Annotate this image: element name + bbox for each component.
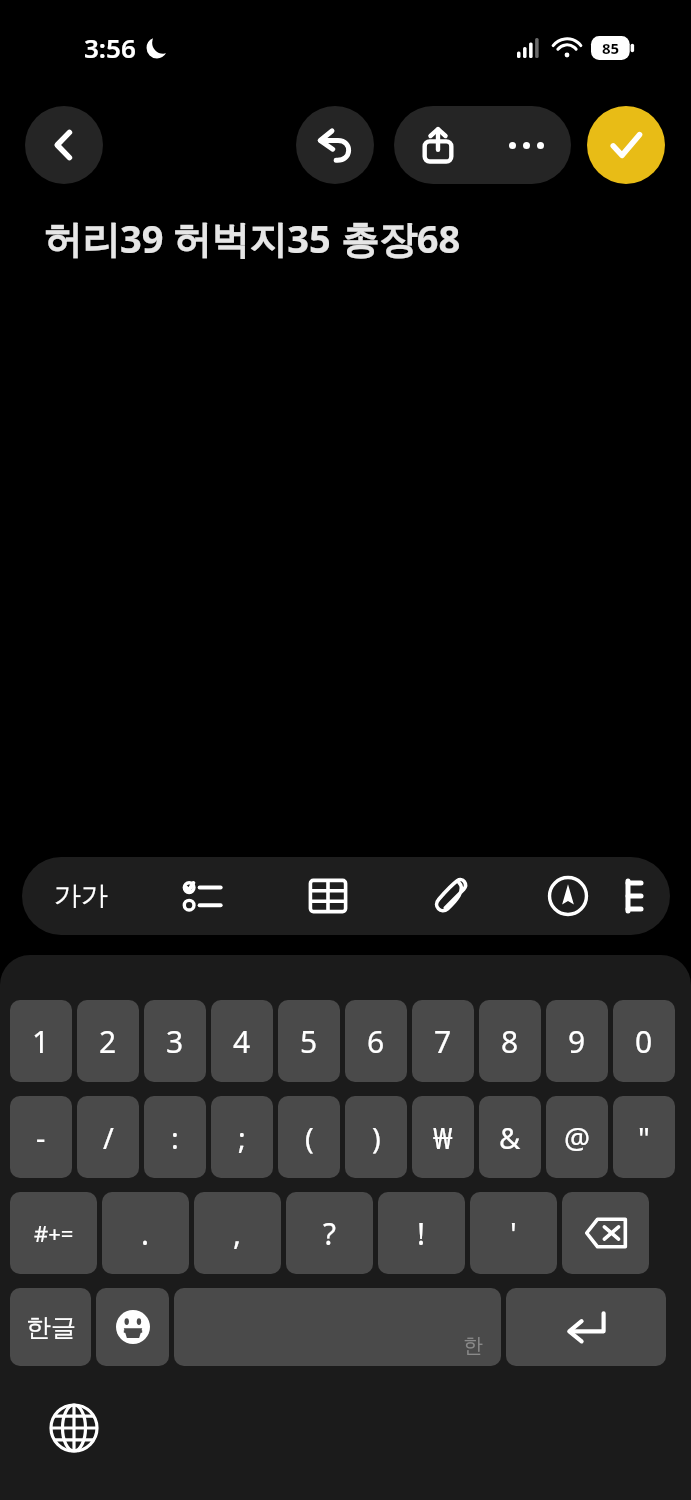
button[interactable]: ? (286, 1192, 373, 1274)
button[interactable]: . (102, 1192, 189, 1274)
staticText: & (499, 1118, 521, 1157)
button[interactable]: 4 (211, 1000, 273, 1082)
button[interactable]: Text format (22, 857, 140, 935)
button[interactable]: 9 (546, 1000, 608, 1082)
staticText: 7 (434, 1021, 452, 1062)
button[interactable]: Backspace (562, 1192, 649, 1274)
staticText: ) (372, 1118, 381, 1157)
button[interactable]: - (10, 1096, 72, 1178)
staticText: ? (323, 1213, 337, 1254)
button[interactable]: 6 (345, 1000, 407, 1082)
staticText: 4 (233, 1021, 251, 1062)
staticText: 3 (166, 1021, 184, 1062)
staticText: 3:56 (84, 30, 136, 65)
button[interactable]: ( (278, 1096, 340, 1178)
button[interactable]: Attach (390, 857, 510, 935)
staticText: . (141, 1213, 150, 1254)
button[interactable]: " (613, 1096, 675, 1178)
button[interactable]: / (77, 1096, 139, 1178)
button[interactable]: 3 (144, 1000, 206, 1082)
button[interactable]: Change language (46, 1400, 102, 1456)
staticText: , (233, 1213, 242, 1254)
staticText: @ (564, 1118, 591, 1157)
staticText: 6 (367, 1021, 385, 1062)
button[interactable]: ₩ (412, 1096, 474, 1178)
button[interactable]: 8 (479, 1000, 541, 1082)
staticText: ' (510, 1213, 517, 1254)
button[interactable]: & (479, 1096, 541, 1178)
staticText: 85 (602, 38, 620, 58)
staticText: ! (417, 1213, 426, 1254)
staticText: 5 (300, 1021, 318, 1062)
button[interactable]: Emoji (96, 1288, 169, 1366)
button[interactable]: 2 (77, 1000, 139, 1082)
button[interactable]: ; (211, 1096, 273, 1178)
button[interactable]: 0 (613, 1000, 675, 1082)
staticText: - (36, 1118, 46, 1157)
staticText: 한 (463, 1333, 483, 1358)
button[interactable]: #+= (10, 1192, 97, 1274)
button[interactable]: Table (265, 857, 390, 935)
button[interactable]: : (144, 1096, 206, 1178)
staticText: : (171, 1118, 179, 1157)
button[interactable]: Undo (296, 106, 374, 184)
button[interactable]: 5 (278, 1000, 340, 1082)
button[interactable]: 1 (10, 1000, 72, 1082)
staticText: ₩ (433, 1118, 453, 1157)
staticText: 1 (32, 1021, 50, 1062)
staticText: #+= (34, 1218, 74, 1248)
staticText: 한글 (26, 1312, 76, 1343)
staticText: / (103, 1118, 114, 1157)
staticText: ; (238, 1118, 246, 1157)
button[interactable]: More options (482, 106, 571, 184)
button[interactable]: @ (546, 1096, 608, 1178)
button[interactable]: ' (470, 1192, 557, 1274)
staticText: 2 (99, 1021, 117, 1062)
staticText: 9 (568, 1021, 586, 1062)
staticText: 가가 (54, 879, 108, 913)
button[interactable]: Checklist (140, 857, 265, 935)
button[interactable]: Back (25, 106, 103, 184)
button[interactable]: Draw (510, 857, 625, 935)
staticText: 0 (635, 1021, 653, 1062)
button[interactable]: Space (174, 1288, 501, 1366)
button[interactable]: ! (378, 1192, 465, 1274)
button[interactable]: Share (394, 106, 482, 184)
button[interactable]: Done (587, 106, 665, 184)
button[interactable]: ) (345, 1096, 407, 1178)
staticText: 허리39 허벅지35 총장68 (44, 212, 461, 264)
button[interactable]: Enter (506, 1288, 666, 1366)
staticText: 8 (501, 1021, 519, 1062)
staticText: ( (305, 1118, 314, 1157)
button[interactable]: , (194, 1192, 281, 1274)
button[interactable]: 한글 (10, 1288, 91, 1366)
button[interactable]: More (625, 857, 670, 935)
button[interactable]: 7 (412, 1000, 474, 1082)
staticText: " (638, 1118, 650, 1157)
